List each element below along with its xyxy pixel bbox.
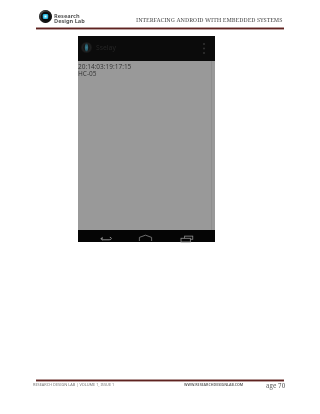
staticText: Sselay — [96, 43, 116, 52]
button[interactable]: Back — [86, 230, 124, 242]
staticText: Research — [54, 12, 80, 20]
button[interactable]: More options — [198, 36, 210, 61]
staticText: 20:14:03:19:17:15 — [78, 62, 132, 71]
staticText: HC-05 — [78, 69, 97, 78]
staticText: Design Lab — [54, 17, 85, 25]
staticText: RESEARCH DESIGN LAB | VOLUME 1, ISSUE 1 — [33, 382, 115, 387]
staticText: WWW.RESEARCHDESIGNLAB.COM — [184, 382, 244, 387]
button[interactable]: Home — [125, 230, 163, 242]
button[interactable]: Recent apps — [167, 230, 205, 242]
staticText: age 70 — [266, 381, 286, 390]
staticText: INTERFACING ANDROID WITH EMBEDDED SYSTEM… — [136, 16, 283, 24]
